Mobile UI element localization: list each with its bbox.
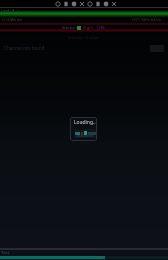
staticText: Text xyxy=(1,250,10,256)
staticText: Level xyxy=(1,8,11,13)
staticText: 17.4 Mb dn xyxy=(1,17,23,22)
staticText: Right xyxy=(83,25,94,31)
staticText: 3 xyxy=(12,8,15,13)
staticText: Stereo xyxy=(62,25,75,31)
button[interactable]: Loading... xyxy=(70,117,97,141)
staticText: Channel not found xyxy=(4,45,45,51)
staticText: Sounds 16 units xyxy=(68,35,100,41)
staticText: Loading... xyxy=(74,119,97,126)
staticText: x xyxy=(17,8,20,13)
staticText: 128k xyxy=(96,25,106,31)
staticText: 1971 MHz 64 kb xyxy=(131,17,161,22)
